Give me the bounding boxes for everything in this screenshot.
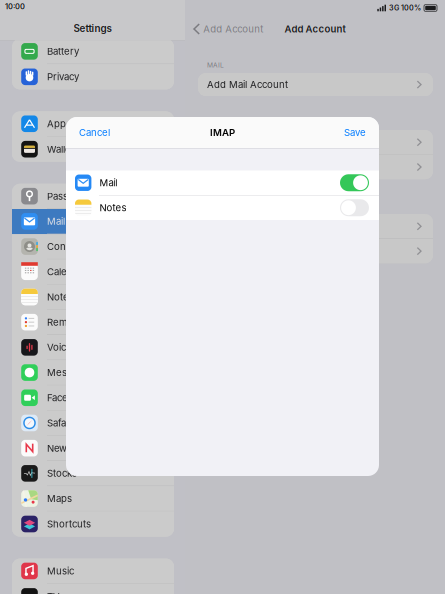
staticText: Contacts [47, 241, 87, 252]
staticText: Stocks [47, 467, 77, 479]
staticText: Voice Memos [47, 341, 109, 353]
staticText: TV [47, 591, 60, 594]
button[interactable]: Safari [12, 411, 174, 436]
staticText: News [47, 442, 72, 454]
button[interactable]: Add Account [185, 19, 263, 39]
staticText: Privacy [47, 71, 79, 83]
staticText: Mail [99, 177, 117, 188]
button[interactable]: Battery [12, 39, 174, 64]
staticText: Add Mail Account [207, 79, 288, 90]
staticText: Cancel [79, 127, 110, 138]
button[interactable]: App Store [12, 111, 174, 137]
button[interactable]: Passwords [12, 184, 174, 209]
staticText: Messages [47, 367, 94, 378]
staticText: Music [47, 565, 74, 577]
button[interactable]: tv [12, 584, 174, 594]
staticText: Add Account [284, 23, 345, 35]
staticText: MAIL [207, 61, 224, 69]
button[interactable]: Privacy [12, 64, 174, 89]
button[interactable]: Calendar [12, 259, 174, 285]
staticText: IMAP [210, 127, 235, 138]
button[interactable]: Music [12, 559, 174, 584]
button[interactable] [198, 155, 433, 179]
button[interactable]: Voice Memos [12, 335, 174, 360]
button[interactable]: Mail [66, 170, 379, 195]
staticText: Add Account [203, 23, 263, 35]
staticText: Calendar [47, 266, 88, 277]
staticText: App Store [47, 118, 93, 129]
button[interactable]: Messages [12, 360, 174, 385]
button[interactable]: Notes [66, 195, 379, 220]
button[interactable]: Save [344, 119, 379, 146]
staticText: Mail [47, 215, 65, 227]
button[interactable]: Wallet [12, 137, 174, 162]
staticText: Settings [73, 22, 111, 34]
staticText: Shortcuts [47, 518, 91, 530]
button[interactable]: News [12, 436, 174, 461]
button[interactable]: FaceTime [12, 385, 174, 411]
staticText: Reminders [47, 316, 96, 328]
button[interactable] [198, 214, 433, 238]
button[interactable] [198, 130, 433, 154]
button[interactable]: Contacts [12, 234, 174, 259]
staticText: Safari [47, 417, 72, 429]
button[interactable]: Cancel [66, 119, 110, 146]
staticText: FaceTime [47, 392, 89, 403]
staticText: Battery [47, 45, 79, 57]
button[interactable]: Stocks [12, 461, 174, 486]
staticText: 3G 100% [389, 4, 421, 12]
staticText: Save [344, 127, 366, 138]
button[interactable]: Reminders [12, 310, 174, 335]
button[interactable]: Maps [12, 486, 174, 511]
staticText: Notes [99, 202, 126, 213]
staticText: Passwords [47, 190, 96, 202]
staticText: Notes [47, 291, 74, 303]
button[interactable]: Shortcuts [12, 511, 174, 537]
button[interactable]: Mail [12, 209, 174, 234]
staticText: Maps [47, 493, 72, 504]
button[interactable]: Add Mail Account [198, 73, 433, 96]
button[interactable] [198, 239, 433, 263]
staticText: 10:00 [5, 2, 25, 11]
button[interactable]: Notes [12, 285, 174, 310]
staticText: Wallet [47, 143, 74, 155]
